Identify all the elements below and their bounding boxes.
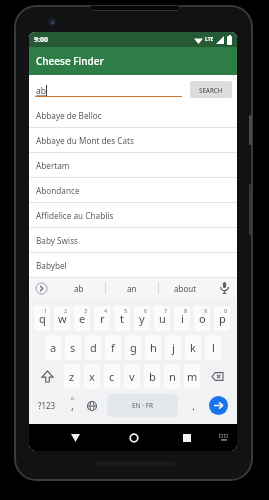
button[interactable]: g (125, 335, 141, 360)
button[interactable]: ab (53, 278, 105, 298)
staticText: 2 (64, 307, 68, 314)
staticText: k (190, 340, 196, 355)
button[interactable]: Abbaye du Mont des Cats (29, 128, 237, 153)
button[interactable]: SEARCH (190, 81, 232, 98)
staticText: o (199, 311, 206, 326)
button[interactable]: h (145, 335, 161, 360)
staticText: c (109, 369, 115, 384)
staticText: Abbaye du Mont des Cats (36, 135, 134, 146)
button[interactable]: m (184, 364, 200, 389)
button[interactable]: , (62, 391, 82, 420)
button[interactable] (179, 424, 195, 451)
button[interactable]: Affidelice au Chablis (29, 203, 237, 228)
button[interactable]: f (105, 335, 121, 360)
staticText: , (71, 398, 74, 413)
staticText: SEARCH (199, 86, 223, 94)
button[interactable]: w (54, 306, 70, 331)
staticText: 5 (124, 307, 128, 314)
staticText: ab (36, 85, 46, 97)
button[interactable]: z (64, 364, 80, 389)
button[interactable]: j (165, 335, 181, 360)
button[interactable]: ?123 (32, 391, 62, 420)
staticText: 0 (224, 307, 228, 314)
staticText: q (39, 311, 46, 326)
button[interactable]: e (74, 306, 90, 331)
staticText: 8 (184, 307, 188, 314)
button[interactable]: an (106, 278, 158, 298)
staticText: 9:00 (34, 35, 48, 45)
staticText: 1 (44, 307, 48, 314)
staticText: an (127, 283, 137, 294)
button[interactable]: Abondance (29, 178, 237, 203)
staticText: p (219, 311, 226, 326)
button[interactable] (216, 424, 232, 451)
staticText: Cheese Finder (36, 54, 104, 68)
button[interactable]: l (205, 335, 221, 360)
button[interactable] (29, 278, 53, 298)
button[interactable]: Abertam (29, 153, 237, 178)
button[interactable]: u (154, 306, 170, 331)
staticText: i (181, 311, 184, 326)
button[interactable] (211, 278, 237, 298)
staticText: r (100, 311, 105, 326)
staticText: 4 (104, 307, 108, 314)
staticText: g (130, 340, 137, 355)
button[interactable] (203, 391, 233, 420)
button[interactable]: t (114, 306, 130, 331)
staticText: 3 (84, 307, 88, 314)
button[interactable]: b (144, 364, 160, 389)
button[interactable]: i (174, 306, 190, 331)
button[interactable]: r (94, 306, 110, 331)
button[interactable]: about (159, 278, 211, 298)
staticText: Abbaye de Belloc (36, 110, 102, 121)
button[interactable]: Abbaye de Belloc (29, 103, 237, 128)
button[interactable]: v (124, 364, 140, 389)
button[interactable]: a (45, 335, 61, 360)
button[interactable]: y (134, 306, 150, 331)
button[interactable] (82, 391, 102, 420)
button[interactable]: x (84, 364, 100, 389)
staticText: t (120, 311, 124, 326)
staticText: w (58, 311, 67, 326)
staticText: Abertam (36, 160, 70, 171)
staticText: h (150, 340, 157, 355)
button[interactable]: . (183, 391, 203, 420)
staticText: Baby Swiss (36, 235, 78, 246)
staticText: j (172, 340, 175, 355)
staticText: Babybel (36, 260, 67, 271)
staticText: 9 (204, 307, 208, 314)
staticText: LTE (205, 36, 214, 43)
staticText: Abondance (36, 185, 80, 196)
button[interactable]: o (194, 306, 210, 331)
staticText: . (192, 398, 195, 413)
button[interactable] (67, 424, 83, 451)
staticText: f (111, 340, 115, 355)
staticText: l (212, 340, 215, 355)
staticText: m (187, 369, 198, 384)
staticText: v (129, 369, 135, 384)
staticText: d (90, 340, 97, 355)
button[interactable]: Babybel (29, 253, 237, 278)
staticText: EN · FR (132, 401, 154, 410)
staticText: 7 (164, 307, 168, 314)
button[interactable]: s (65, 335, 81, 360)
button[interactable]: Baby Swiss (29, 228, 237, 253)
staticText: y (139, 311, 145, 326)
button[interactable]: n (164, 364, 180, 389)
button[interactable] (125, 424, 142, 451)
staticText: ?123 (38, 400, 56, 411)
button[interactable] (34, 364, 60, 389)
button[interactable]: EN · FR (107, 394, 178, 417)
button[interactable] (204, 364, 230, 389)
staticText: n (169, 369, 176, 384)
button[interactable]: d (85, 335, 101, 360)
button[interactable]: c (104, 364, 120, 389)
button[interactable]: p (214, 306, 230, 331)
staticText: about (174, 283, 197, 294)
button[interactable]: k (185, 335, 201, 360)
button[interactable]: q (34, 306, 50, 331)
staticText: ab (74, 283, 84, 294)
staticText: s (70, 340, 76, 355)
staticText: x (89, 369, 95, 384)
staticText: Affidelice au Chablis (36, 210, 114, 221)
